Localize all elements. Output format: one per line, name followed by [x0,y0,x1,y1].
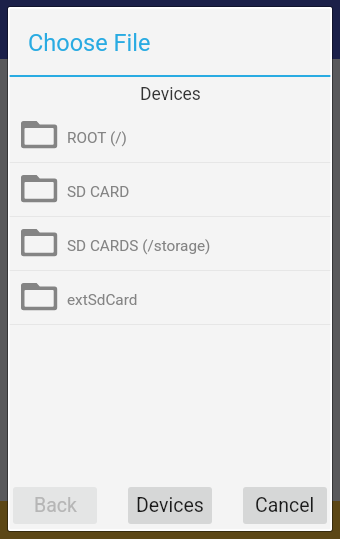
button[interactable]: SD CARD [8,163,332,216]
button[interactable]: extSdCard [8,271,332,324]
staticText: extSdCard [67,291,138,309]
button[interactable]: SD CARDS (/storage) [8,217,332,270]
staticText: SD CARD [67,183,130,201]
staticText: ROOT (/) [67,129,127,147]
staticText: Cancel [255,494,315,517]
button[interactable]: Devices [128,487,212,524]
staticText: Devices [140,84,201,105]
button[interactable]: Cancel [243,487,327,524]
staticText: SD CARDS (/storage) [67,237,211,255]
staticText: Choose File [28,29,151,57]
staticText: Back [34,494,77,517]
button[interactable]: ROOT (/) [8,109,332,162]
button[interactable]: Back [13,487,97,524]
staticText: Devices [136,494,204,517]
